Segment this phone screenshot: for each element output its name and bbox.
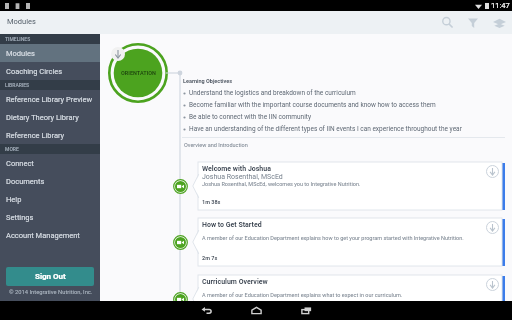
button[interactable]: Curriculum Overview: [198, 275, 505, 320]
staticText: Overview and Introduction: [184, 142, 248, 148]
button[interactable]: Download video: [486, 221, 499, 234]
button[interactable]: Welcome with Joshua: [198, 162, 505, 210]
button[interactable]: Play video: [173, 292, 188, 307]
staticText: Documents: [6, 177, 45, 186]
button[interactable]: Settings: [0, 208, 100, 226]
staticText: Modules: [6, 49, 35, 58]
staticText: A member of our Education Department exp…: [202, 235, 464, 241]
staticText: Joshua Rosenthal, MScEd, welcomes you to…: [202, 181, 361, 187]
button[interactable]: Home: [231, 301, 281, 320]
button[interactable]: Modules: [0, 44, 100, 62]
staticText: Welcome with Joshua: [202, 165, 271, 173]
staticText: Dietary Theory Library: [6, 113, 79, 122]
staticText: Help: [6, 195, 22, 204]
staticText: Account Management: [6, 231, 80, 240]
staticText: A member of our Education Department exp…: [202, 292, 403, 298]
staticText: ORIENTATION: [121, 70, 156, 76]
staticText: 1m 38s: [202, 199, 221, 205]
button[interactable]: Play video: [173, 179, 188, 194]
staticText: Connect: [6, 159, 34, 168]
button[interactable]: Courses: [486, 11, 512, 34]
button[interactable]: Download module: [111, 47, 125, 61]
staticText: Modules: [7, 17, 36, 26]
button[interactable]: Download video: [486, 165, 499, 178]
button[interactable]: Reference Library Preview: [0, 90, 100, 108]
button[interactable]: Help: [0, 190, 100, 208]
staticText: Reference Library Preview: [6, 95, 93, 104]
staticText: 11:47: [491, 1, 510, 10]
button[interactable]: Recents: [281, 301, 331, 320]
staticText: Sign Out: [35, 272, 66, 281]
staticText: Be able to connect with the IIN communit…: [189, 113, 311, 121]
staticText: © 2014 Integrative Nutrition, Inc.: [9, 289, 93, 296]
button[interactable]: Filter: [460, 11, 486, 34]
staticText: How to Get Started: [202, 221, 262, 229]
staticText: TIMELINES: [5, 36, 31, 42]
button[interactable]: Account Management: [0, 226, 100, 244]
button[interactable]: Sign Out: [6, 267, 94, 286]
staticText: Joshua Rosenthal, MScEd: [202, 173, 283, 181]
button[interactable]: Back: [181, 301, 231, 320]
button[interactable]: Documents: [0, 172, 100, 190]
staticText: LIBRARIES: [5, 82, 30, 88]
staticText: Become familiar with the important cours…: [189, 101, 436, 109]
staticText: 3m 1s: [202, 312, 218, 318]
staticText: Understand the logistics and breakdown o…: [189, 89, 356, 97]
button[interactable]: Download video: [486, 278, 499, 291]
staticText: Have an understanding of the different t…: [189, 125, 462, 133]
button[interactable]: Play video: [173, 235, 188, 250]
button[interactable]: Reference Library: [0, 126, 100, 144]
button[interactable]: Search: [434, 11, 460, 34]
button[interactable]: Connect: [0, 154, 100, 172]
button[interactable]: How to Get Started: [198, 218, 505, 266]
staticText: Reference Library: [6, 131, 65, 140]
staticText: MORE: [5, 146, 19, 152]
staticText: Learning Objectives: [183, 78, 233, 84]
staticText: Coaching Circles: [6, 67, 63, 76]
button[interactable]: Dietary Theory Library: [0, 108, 100, 126]
staticText: 2m 7s: [202, 255, 218, 261]
staticText: Curriculum Overview: [202, 278, 268, 286]
button[interactable]: Coaching Circles: [0, 62, 100, 80]
staticText: Settings: [6, 213, 34, 222]
